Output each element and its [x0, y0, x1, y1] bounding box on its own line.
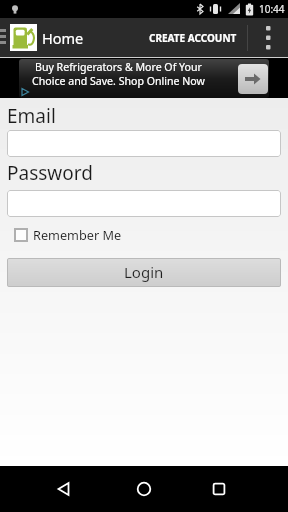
- button[interactable]: [129, 474, 159, 504]
- staticText: CREATE ACCOUNT: [149, 31, 237, 45]
- button[interactable]: Buy Refrigerators & More Of Your: [19, 59, 269, 98]
- button[interactable]: [204, 474, 234, 504]
- staticText: Choice and Save. Shop Online Now: [32, 74, 205, 88]
- button[interactable]: CREATE ACCOUNT: [139, 18, 247, 57]
- button[interactable]: [48, 474, 78, 504]
- button[interactable]: Remember Me: [14, 228, 122, 245]
- staticText: Email: [7, 103, 56, 129]
- button[interactable]: [248, 18, 288, 57]
- staticText: Buy Refrigerators & More Of Your: [35, 60, 202, 74]
- button[interactable]: [7, 190, 281, 217]
- staticText: Login: [124, 262, 164, 282]
- button[interactable]: [7, 130, 281, 157]
- staticText: Home: [42, 28, 84, 48]
- staticText: Remember Me: [33, 226, 122, 243]
- staticText: 10:44: [259, 2, 285, 16]
- button[interactable]: Login: [7, 258, 281, 287]
- staticText: Password: [7, 160, 93, 186]
